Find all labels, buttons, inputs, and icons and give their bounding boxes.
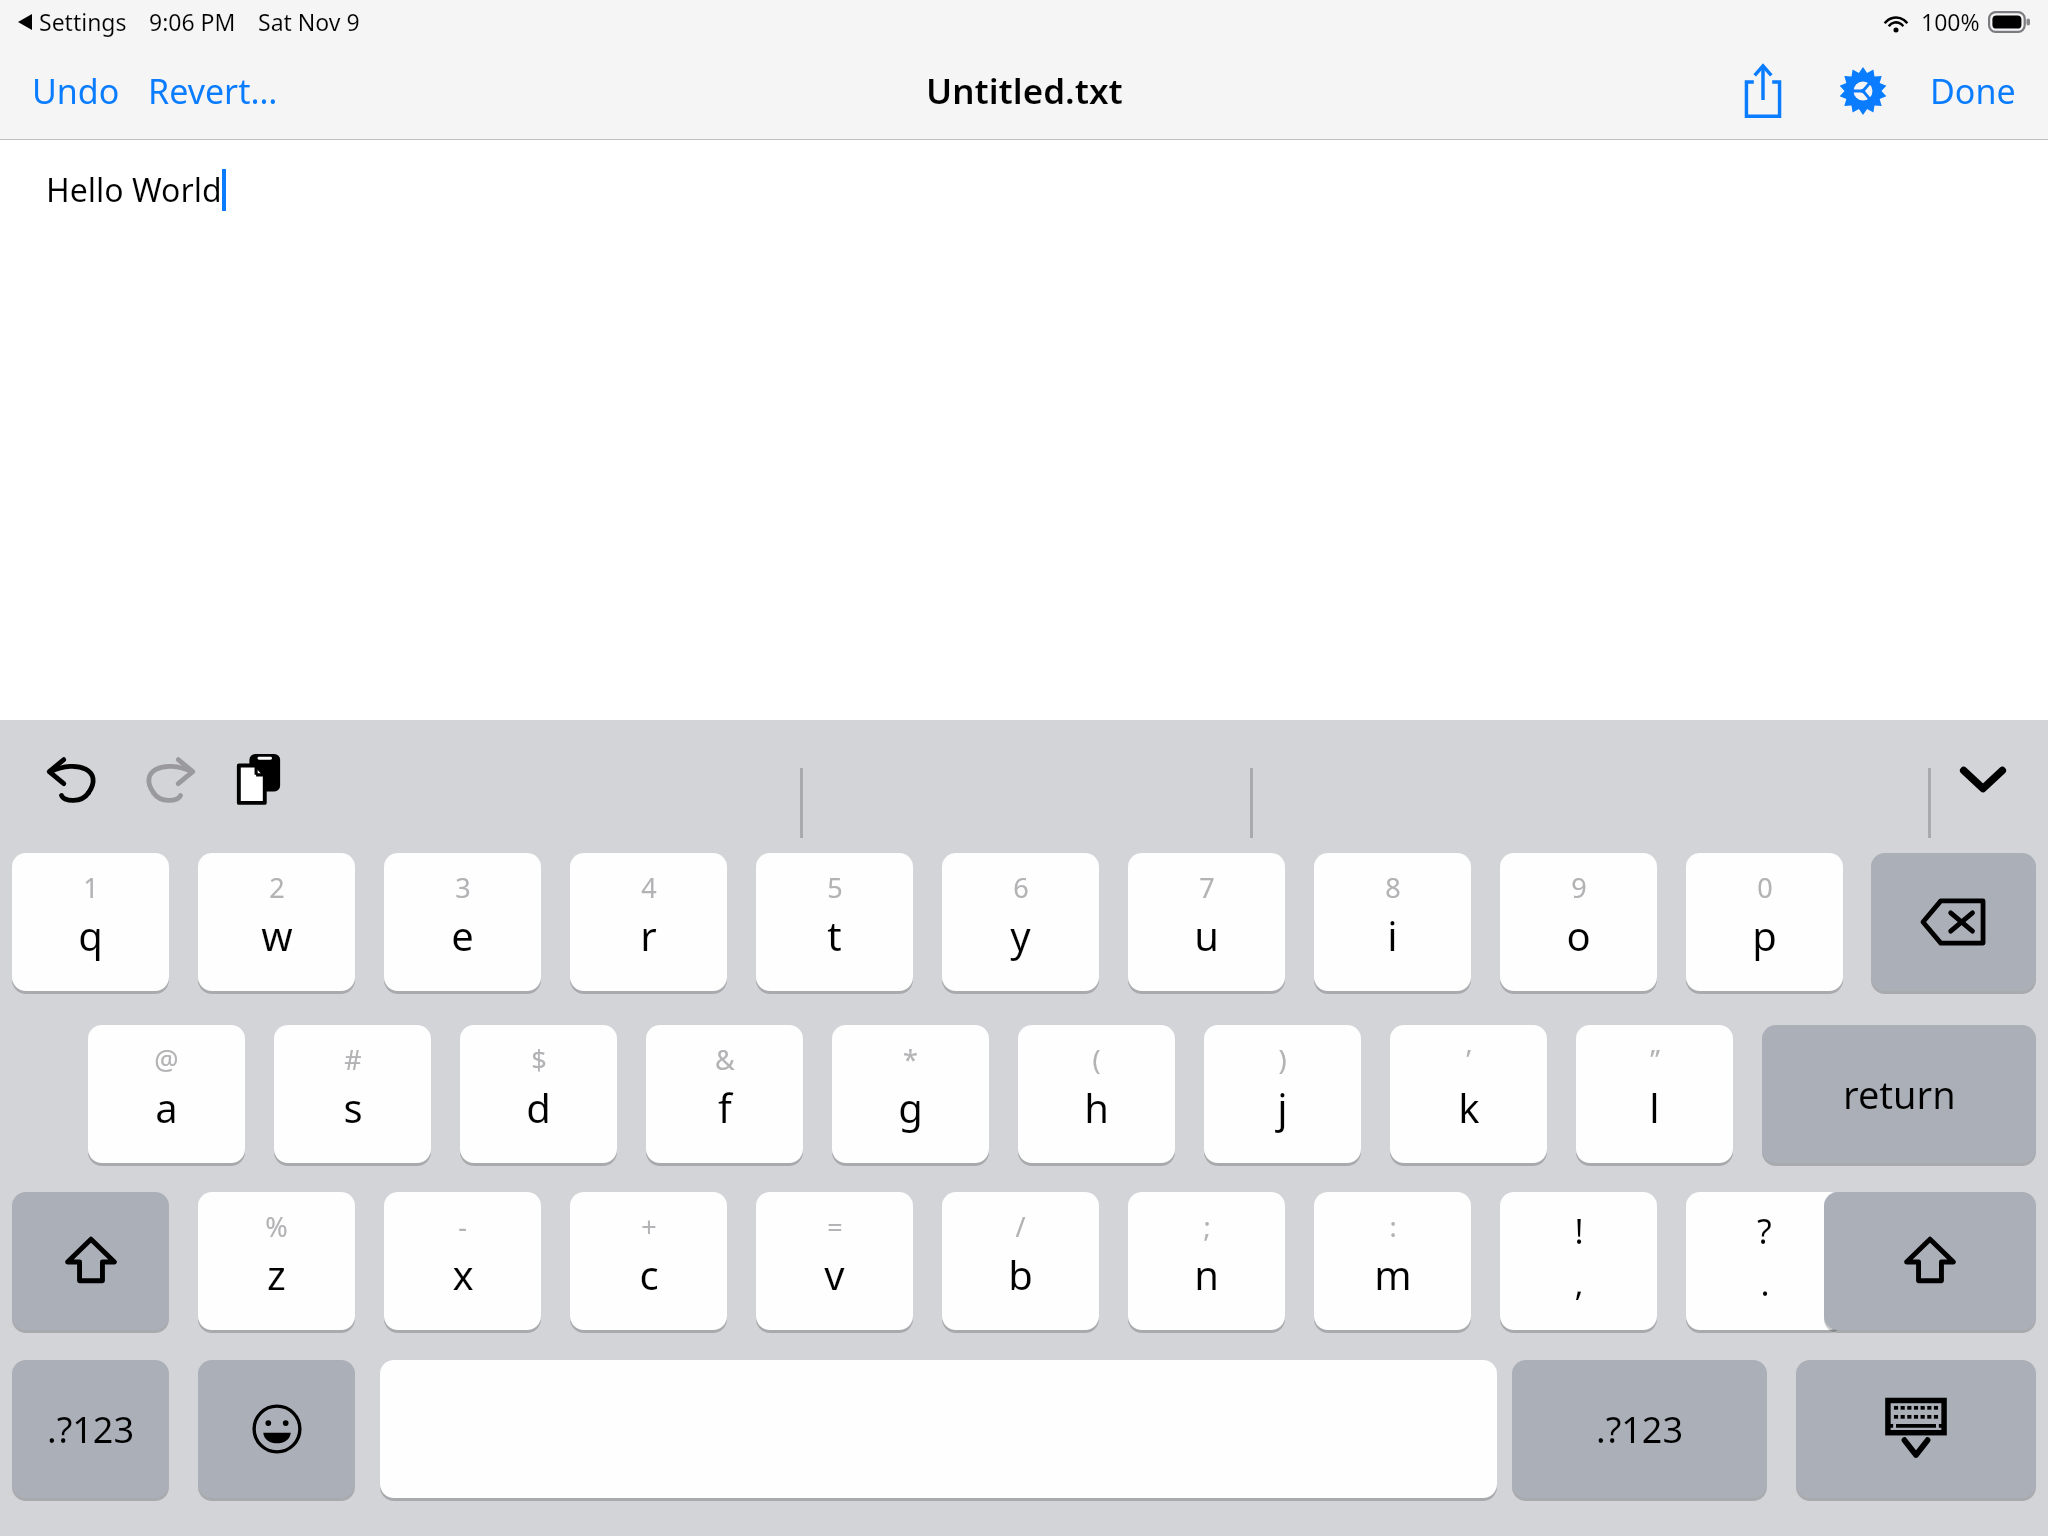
staticText: =	[827, 1208, 843, 1245]
button[interactable]: return	[1762, 1025, 2036, 1163]
button[interactable]: %	[198, 1192, 355, 1330]
staticText: ’	[1466, 1041, 1471, 1078]
staticText: 0	[1757, 869, 1773, 906]
staticText: $	[531, 1041, 547, 1078]
staticText: c	[639, 1247, 659, 1301]
button[interactable]: ;	[1128, 1192, 1285, 1330]
staticText: 1	[83, 869, 99, 906]
button[interactable]: Emoji	[198, 1360, 355, 1498]
staticText: 4	[641, 869, 657, 906]
staticText: :	[1389, 1208, 1397, 1245]
button[interactable]: (	[1018, 1025, 1175, 1163]
button[interactable]: *	[832, 1025, 989, 1163]
staticText: ,	[1574, 1260, 1584, 1306]
staticText: #	[344, 1041, 362, 1078]
button[interactable]: Undo	[36, 740, 114, 818]
staticText: Done	[1930, 68, 2016, 114]
staticText: 3	[455, 869, 471, 906]
staticText: Sat Nov 9	[258, 6, 360, 37]
button[interactable]: Paste	[220, 740, 298, 818]
button[interactable]: Hide keyboard	[1944, 740, 2022, 818]
button[interactable]: 3	[384, 853, 541, 991]
button[interactable]: ’	[1390, 1025, 1547, 1163]
staticText: v	[824, 1247, 845, 1301]
staticText: j	[1277, 1080, 1288, 1134]
button[interactable]: .?123	[12, 1360, 169, 1498]
staticText: .?123	[1596, 1405, 1684, 1454]
staticText: h	[1084, 1080, 1109, 1134]
staticText: )	[1278, 1041, 1287, 1078]
staticText: m	[1374, 1247, 1412, 1301]
staticText: Untitled.txt	[926, 67, 1123, 115]
button[interactable]: -	[384, 1192, 541, 1330]
staticText: Settings	[39, 6, 127, 37]
staticText: f	[718, 1080, 732, 1134]
staticText: o	[1566, 908, 1591, 962]
button[interactable]: =	[756, 1192, 913, 1330]
button[interactable]: Undo	[24, 60, 128, 122]
staticText: /	[1015, 1208, 1026, 1245]
button[interactable]: &	[646, 1025, 803, 1163]
staticText: ”	[1650, 1041, 1660, 1078]
staticText: ;	[1203, 1208, 1211, 1245]
staticText: !	[1574, 1208, 1584, 1254]
button[interactable]: Backspace	[1871, 853, 2036, 991]
button[interactable]: )	[1204, 1025, 1361, 1163]
button[interactable]: +	[570, 1192, 727, 1330]
staticText: x	[452, 1247, 474, 1301]
staticText: b	[1008, 1247, 1033, 1301]
button[interactable]: 1	[12, 853, 169, 991]
staticText: d	[526, 1080, 551, 1134]
button[interactable]: ?	[1686, 1192, 1843, 1330]
staticText: w	[261, 908, 293, 962]
staticText: y	[1010, 908, 1031, 962]
staticText: return	[1843, 1068, 1956, 1120]
staticText: Hello World	[46, 168, 222, 212]
staticText: +	[641, 1208, 657, 1245]
staticText: p	[1752, 908, 1777, 962]
staticText: &	[715, 1041, 735, 1078]
staticText: -	[458, 1208, 467, 1245]
button[interactable]: /	[942, 1192, 1099, 1330]
button[interactable]: 4	[570, 853, 727, 991]
staticText: 2	[269, 869, 285, 906]
button[interactable]: Settings	[1826, 54, 1900, 128]
staticText: 6	[1013, 869, 1029, 906]
staticText: 9	[1571, 869, 1587, 906]
button[interactable]: Redo	[128, 740, 206, 818]
button[interactable]: @	[88, 1025, 245, 1163]
staticText: Undo	[32, 68, 120, 114]
staticText: z	[267, 1247, 286, 1301]
button[interactable]: 8	[1314, 853, 1471, 991]
button[interactable]: $	[460, 1025, 617, 1163]
button[interactable]: 7	[1128, 853, 1285, 991]
button[interactable]: ”	[1576, 1025, 1733, 1163]
button[interactable]: 0	[1686, 853, 1843, 991]
staticText: .?123	[47, 1405, 135, 1454]
button[interactable]: 9	[1500, 853, 1657, 991]
staticText: (	[1092, 1041, 1101, 1078]
staticText: e	[451, 908, 474, 962]
staticText: i	[1387, 908, 1398, 962]
button[interactable]: !	[1500, 1192, 1657, 1330]
staticText: g	[898, 1080, 923, 1134]
button[interactable]: .?123	[1512, 1360, 1767, 1498]
button[interactable]: Share	[1726, 54, 1800, 128]
button[interactable]: 5	[756, 853, 913, 991]
button[interactable]: Shift	[12, 1192, 169, 1330]
staticText: 8	[1385, 869, 1401, 906]
button[interactable]: #	[274, 1025, 431, 1163]
staticText: %	[265, 1208, 288, 1245]
staticText: k	[1458, 1080, 1480, 1134]
staticText: *	[903, 1041, 918, 1078]
button[interactable]: Shift	[1824, 1192, 2036, 1330]
button[interactable]: 2	[198, 853, 355, 991]
button[interactable]: Hide keyboard	[1796, 1360, 2036, 1498]
staticText: q	[78, 908, 103, 962]
staticText: 5	[827, 869, 843, 906]
button[interactable]: Done	[1922, 60, 2024, 122]
button[interactable]: 6	[942, 853, 1099, 991]
button[interactable]: :	[1314, 1192, 1471, 1330]
button[interactable]: Revert…	[140, 60, 286, 122]
